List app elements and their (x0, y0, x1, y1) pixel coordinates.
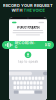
staticText: RECORD YOUR REQUEST (3, 3, 53, 8)
button[interactable]: Record (25, 51, 31, 58)
staticText: Voice request (16, 25, 39, 29)
staticText: 0:12 (44, 43, 50, 47)
staticText: WITH (11, 8, 22, 13)
button[interactable]: RECORDING (2, 41, 54, 49)
staticText: Tap to speak (17, 60, 38, 63)
staticText: THE VOICE (24, 8, 45, 13)
staticText: RECORDING (15, 41, 36, 49)
